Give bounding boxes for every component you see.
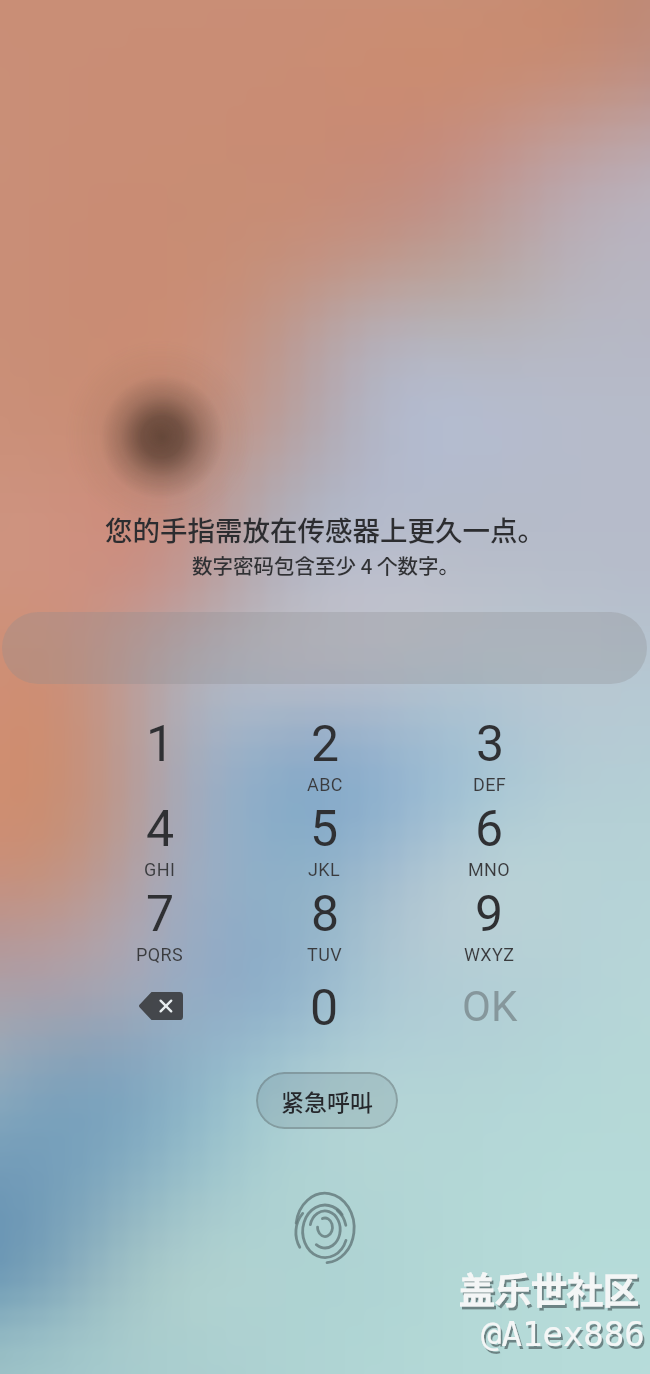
button[interactable]: Delete bbox=[78, 968, 242, 1053]
staticText: 5 bbox=[310, 800, 339, 859]
staticText: 数字密码包含至少 4 个数字。 bbox=[192, 550, 459, 580]
staticText: @A1ex886 bbox=[483, 1317, 647, 1357]
button[interactable]: 7 bbox=[78, 883, 242, 968]
staticText: 2 bbox=[311, 715, 340, 774]
staticText: @A1ex886 bbox=[481, 1314, 645, 1354]
button[interactable]: 1 bbox=[78, 713, 242, 798]
button[interactable]: 9 bbox=[407, 883, 572, 968]
staticText: ABC bbox=[307, 774, 343, 795]
button[interactable]: 8 bbox=[242, 883, 407, 968]
staticText: 0 bbox=[310, 979, 339, 1038]
button[interactable]: 0 bbox=[242, 968, 407, 1053]
button[interactable]: 4 bbox=[78, 798, 242, 883]
button[interactable]: 2 bbox=[242, 713, 407, 798]
staticText: 7 bbox=[146, 885, 175, 944]
button[interactable]: OK bbox=[407, 968, 572, 1053]
staticText: 1 bbox=[146, 715, 175, 774]
staticText: 盖乐世社区 bbox=[461, 1265, 642, 1317]
staticText: WXYZ bbox=[464, 944, 515, 965]
staticText: 盖乐世社区 bbox=[459, 1262, 640, 1314]
button[interactable]: 5 bbox=[242, 798, 407, 883]
staticText: 4 bbox=[146, 800, 175, 859]
staticText: 8 bbox=[311, 885, 340, 944]
staticText: 3 bbox=[476, 715, 505, 774]
staticText: 您的手指需放在传感器上更久一点。 bbox=[105, 509, 545, 549]
staticText: JKL bbox=[308, 859, 341, 880]
staticText: TUV bbox=[307, 944, 343, 965]
staticText: 6 bbox=[475, 800, 504, 859]
staticText: OK bbox=[462, 982, 518, 1031]
staticText: GHI bbox=[144, 859, 176, 880]
button[interactable]: 紧急呼叫 bbox=[256, 1072, 398, 1129]
staticText: DEF bbox=[473, 774, 507, 795]
button[interactable] bbox=[2, 612, 647, 684]
button[interactable]: 6 bbox=[407, 798, 572, 883]
staticText: MNO bbox=[468, 859, 511, 880]
staticText: PQRS bbox=[136, 944, 184, 965]
staticText: 紧急呼叫 bbox=[281, 1084, 373, 1117]
button[interactable]: Fingerprint sensor bbox=[283, 1185, 367, 1271]
staticText: 9 bbox=[475, 885, 504, 944]
button[interactable]: 3 bbox=[407, 713, 572, 798]
